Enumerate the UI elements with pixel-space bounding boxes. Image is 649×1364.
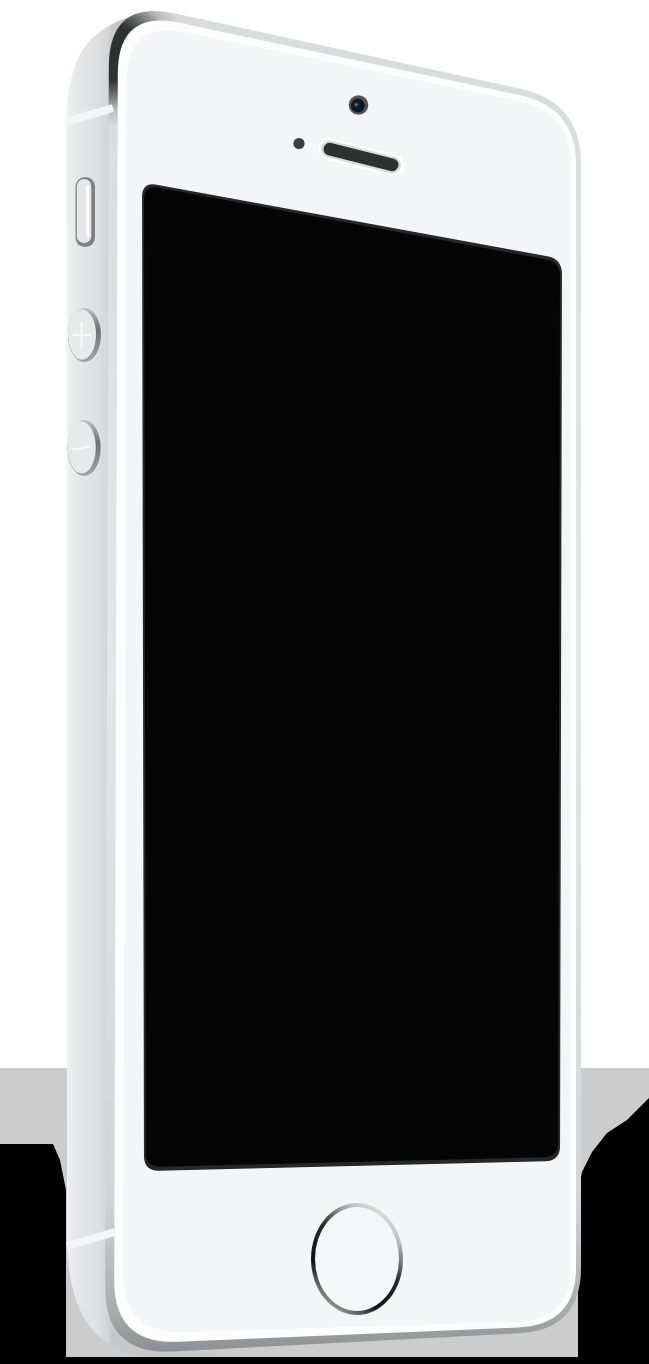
button[interactable]: White iPhone shown at an angle	[0, 0, 649, 1364]
